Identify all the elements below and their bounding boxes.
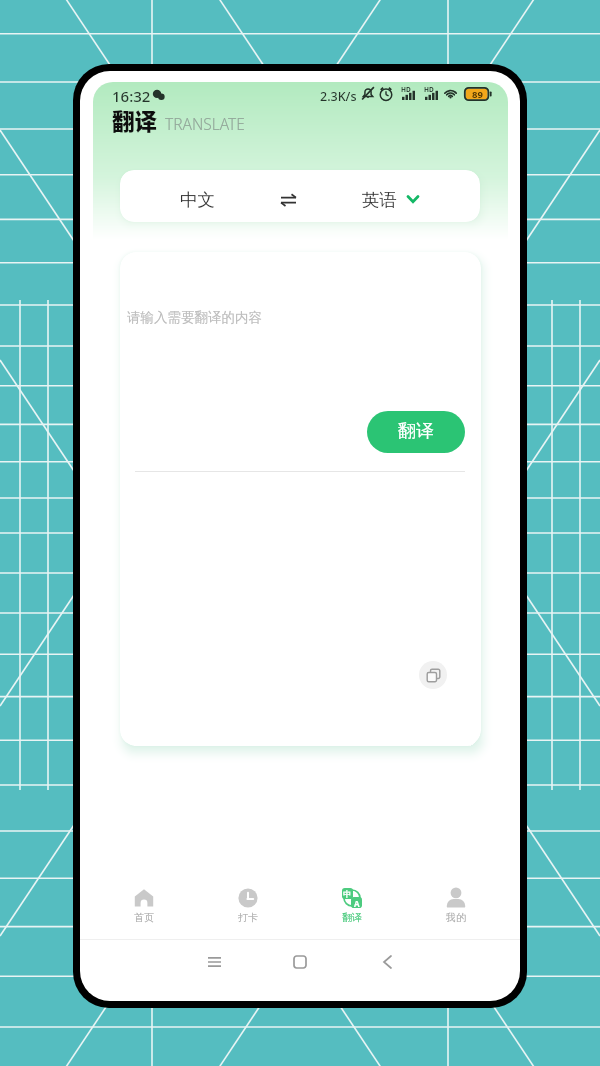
button[interactable]: 中文 [120,170,480,222]
button[interactable]: 打卡 [196,887,300,924]
staticText: 打卡 [238,911,258,924]
staticText: 我的 [446,911,466,924]
staticText: 中 [343,889,351,899]
button[interactable]: 翻译 [367,411,465,453]
staticText: 英语 [362,189,397,211]
staticText: 16:32 [112,86,151,106]
staticText: 翻译 [398,420,434,443]
button[interactable]: Back [365,940,409,984]
button[interactable]: 我的 [404,887,508,924]
button[interactable]: 中 [300,887,404,924]
staticText: 翻译 [342,911,362,924]
staticText: 翻译 [112,104,158,137]
button[interactable]: Recent apps [192,940,236,984]
staticText: 中文 [180,189,215,211]
button[interactable]: 首页 [92,887,196,924]
staticText: TRANSLATE [165,113,245,134]
staticText: 89 [472,88,483,101]
staticText: 首页 [134,911,154,924]
button[interactable]: Copy [419,661,447,689]
staticText: HD [401,85,411,94]
staticText: 请输入需要翻译的内容 [127,309,262,326]
button[interactable]: Home [278,940,322,984]
staticText: 2.3K/s [320,88,357,105]
staticText: HD [424,85,434,94]
staticText: A [354,898,360,909]
